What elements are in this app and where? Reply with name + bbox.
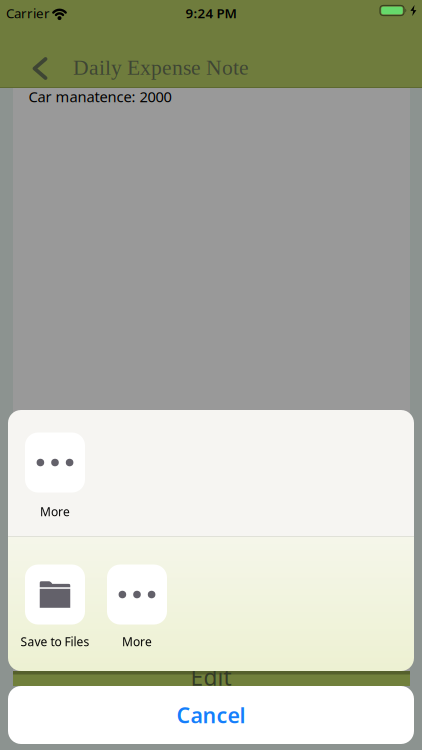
- staticText: 9:24 PM: [185, 4, 236, 22]
- button[interactable]: More: [107, 564, 167, 649]
- staticText: Save to Files: [20, 633, 89, 649]
- button[interactable]: Edit: [190, 662, 231, 692]
- staticText: More: [40, 503, 70, 519]
- button[interactable]: Cancel: [8, 686, 414, 744]
- staticText: More: [122, 633, 152, 649]
- button[interactable]: Save to Files: [20, 564, 89, 649]
- staticText: Edit: [190, 662, 231, 692]
- staticText: Carrier: [6, 4, 50, 22]
- button[interactable]: Back: [23, 48, 57, 88]
- staticText: Cancel: [176, 701, 245, 729]
- button[interactable]: More: [25, 432, 85, 519]
- staticText: Car manatence: 2000: [28, 87, 171, 106]
- staticText: Daily Expense Note: [73, 55, 249, 79]
